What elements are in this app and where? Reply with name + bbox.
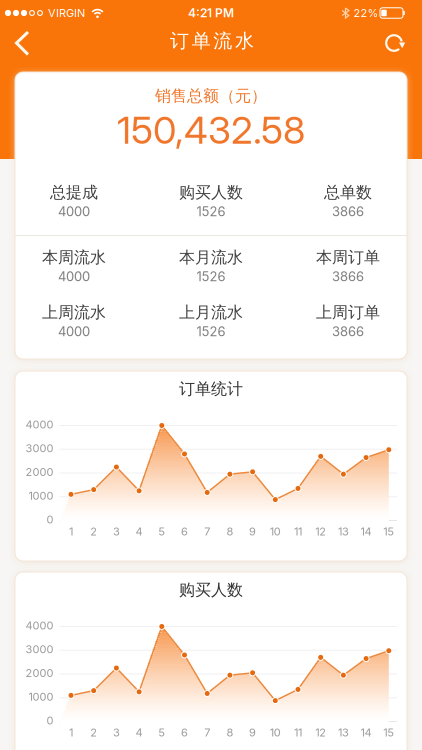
staticText: 本周订单 (316, 248, 380, 267)
staticText: 4 (136, 525, 143, 538)
staticText: 订 (170, 29, 189, 53)
staticText: 14 (361, 525, 372, 538)
staticText: 1000 (28, 489, 53, 502)
staticText: 3 (113, 525, 120, 538)
staticText: 4000 (25, 619, 53, 632)
staticText: 4000 (25, 418, 53, 431)
staticText: 1 (69, 726, 73, 739)
staticText: 14 (361, 726, 372, 739)
staticText: 15 (383, 726, 394, 739)
staticText: 0 (46, 714, 53, 727)
staticText: 0 (46, 513, 53, 526)
staticText: 11 (294, 726, 302, 739)
staticText: 15 (383, 525, 394, 538)
staticText: 12 (315, 726, 326, 739)
staticText: 4:21 PM (188, 6, 234, 20)
staticText: 13 (338, 726, 349, 739)
staticText: 订单统计 (179, 379, 243, 399)
staticText: VIRGIN (48, 6, 85, 19)
staticText: 7 (204, 525, 210, 538)
staticText: 本周流水 (42, 248, 106, 267)
button[interactable]: Refresh (372, 20, 416, 62)
staticText: 水 (235, 29, 254, 53)
staticText: 上周流水 (42, 303, 106, 322)
staticText: 单 (192, 29, 211, 53)
staticText: 4 (136, 726, 143, 739)
staticText: 总提成 (50, 183, 98, 202)
staticText: 3866 (332, 269, 364, 284)
staticText: 4000 (58, 204, 90, 219)
staticText: 2000 (25, 465, 53, 478)
button[interactable]: Back (0, 20, 44, 62)
staticText: 购买人数 (179, 580, 243, 600)
staticText: 5 (158, 726, 165, 739)
staticText: 1526 (196, 204, 225, 219)
staticText: 1526 (196, 269, 225, 284)
staticText: 8 (226, 525, 233, 538)
staticText: 4000 (58, 269, 90, 284)
staticText: 5 (158, 525, 165, 538)
staticText: 销售总额（元） (155, 86, 267, 106)
staticText: 8 (226, 726, 233, 739)
staticText: 9 (249, 726, 256, 739)
staticText: 11 (294, 525, 302, 538)
staticText: 流 (213, 29, 232, 53)
staticText: 6 (181, 726, 188, 739)
staticText: 上月流水 (179, 303, 243, 322)
staticText: 2 (90, 726, 97, 739)
staticText: 本月流水 (179, 248, 243, 267)
staticText: 上周订单 (316, 303, 380, 322)
staticText: 3000 (25, 442, 53, 455)
staticText: 2 (90, 525, 97, 538)
staticText: 3000 (25, 643, 53, 656)
staticText: 7 (204, 726, 210, 739)
staticText: 总单数 (324, 183, 372, 202)
staticText: 3 (113, 726, 120, 739)
staticText: 6 (181, 525, 188, 538)
staticText: 1526 (196, 324, 225, 339)
staticText: 2000 (25, 666, 53, 679)
staticText: 4000 (58, 324, 90, 339)
staticText: 购买人数 (179, 183, 243, 202)
staticText: 1 (69, 525, 73, 538)
staticText: 1000 (28, 690, 53, 703)
staticText: 13 (338, 525, 349, 538)
staticText: 12 (315, 525, 326, 538)
staticText: 150,432.58 (117, 108, 305, 152)
staticText: 10 (270, 525, 281, 538)
staticText: 22% (353, 6, 378, 19)
staticText: 3866 (332, 324, 364, 339)
staticText: 3866 (332, 204, 364, 219)
staticText: 10 (270, 726, 281, 739)
staticText: 9 (249, 525, 256, 538)
